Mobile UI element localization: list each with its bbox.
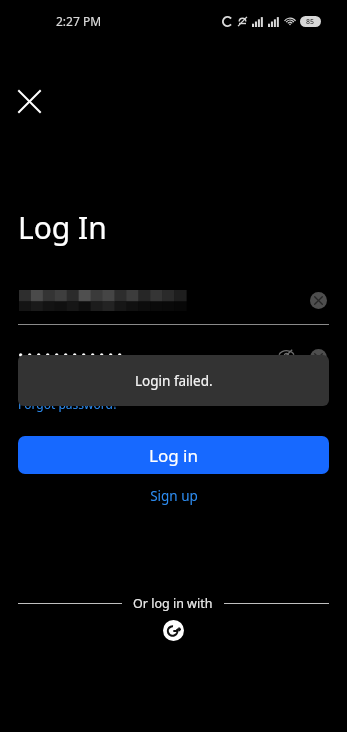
button[interactable] bbox=[18, 286, 329, 326]
staticText: 85 bbox=[306, 17, 315, 27]
staticText: Log in bbox=[149, 444, 198, 467]
button[interactable]: Login failed. bbox=[18, 355, 329, 406]
staticText: Sign up bbox=[150, 487, 198, 505]
button[interactable]: Log in with Google bbox=[163, 620, 184, 641]
button[interactable]: Sign up bbox=[144, 485, 204, 507]
staticText: 2:27 PM bbox=[56, 13, 102, 29]
staticText: Login failed. bbox=[135, 372, 213, 390]
button[interactable]: Show password bbox=[275, 344, 297, 366]
button[interactable]: Close bbox=[10, 82, 48, 120]
button[interactable]: Forgot password? bbox=[18, 396, 119, 412]
button[interactable]: Log in bbox=[18, 436, 329, 474]
button[interactable]: Clear text bbox=[308, 347, 328, 367]
button[interactable]: Clear text bbox=[308, 290, 328, 310]
button[interactable] bbox=[18, 344, 329, 384]
staticText: Or log in with bbox=[133, 595, 213, 612]
staticText: Log In bbox=[18, 207, 107, 248]
